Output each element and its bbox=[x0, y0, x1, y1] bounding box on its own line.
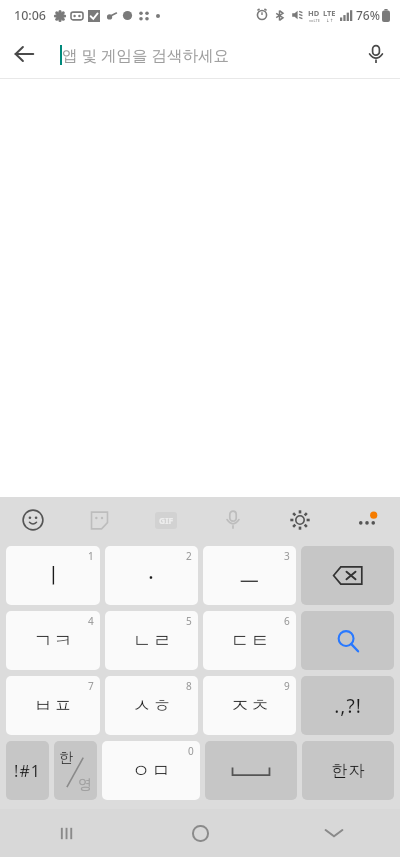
button[interactable]: Stickers bbox=[66, 497, 132, 543]
button[interactable]: Home bbox=[134, 809, 267, 857]
staticText: 9 bbox=[284, 679, 290, 693]
staticText: ㅂㅍ bbox=[33, 694, 73, 718]
staticText: 한자 bbox=[331, 761, 365, 781]
staticText: ㅇㅁ bbox=[131, 759, 171, 783]
staticText: ㄱㅋ bbox=[33, 629, 73, 653]
button[interactable]: ㅂㅍ bbox=[6, 676, 100, 735]
staticText: ㅣ bbox=[42, 562, 65, 590]
staticText: ㄷㅌ bbox=[230, 629, 270, 653]
staticText: ㅅㅎ bbox=[132, 694, 172, 718]
staticText: 7 bbox=[88, 679, 94, 693]
staticText: ㄴㄹ bbox=[132, 629, 172, 653]
button[interactable]: Backspace bbox=[301, 546, 394, 605]
button[interactable]: Space bbox=[205, 741, 297, 800]
button[interactable]: 한자 bbox=[302, 741, 394, 800]
button[interactable]: Voice search bbox=[352, 30, 400, 78]
staticText: GIF bbox=[159, 515, 174, 527]
staticText: 3 bbox=[284, 549, 290, 563]
button[interactable]: · bbox=[105, 546, 198, 605]
staticText: LTE bbox=[323, 8, 336, 18]
button[interactable]: ㅡ bbox=[203, 546, 296, 605]
staticText: ㅈㅊ bbox=[230, 694, 270, 718]
button[interactable]: Recent apps bbox=[0, 809, 134, 857]
staticText: voLTE bbox=[309, 18, 320, 23]
button[interactable]: !#1 bbox=[6, 741, 49, 800]
button[interactable]: Korean English toggle bbox=[54, 741, 97, 800]
button[interactable]: ㄱㅋ bbox=[6, 611, 100, 670]
staticText: 4 bbox=[88, 614, 94, 628]
button[interactable]: Hide keyboard bbox=[267, 809, 400, 857]
staticText: ㅡ bbox=[238, 562, 261, 590]
staticText: 한 bbox=[59, 749, 73, 767]
button[interactable]: Voice input bbox=[199, 497, 266, 543]
staticText: · bbox=[148, 561, 155, 591]
button[interactable]: ㅣ bbox=[6, 546, 100, 605]
button[interactable]: ㅈㅊ bbox=[203, 676, 296, 735]
button[interactable]: ㅅㅎ bbox=[105, 676, 198, 735]
staticText: 10:06 bbox=[14, 7, 47, 24]
staticText: !#1 bbox=[14, 760, 41, 782]
staticText: 앱 및 게임을 검색하세요 bbox=[62, 44, 230, 65]
staticText: 76% bbox=[356, 7, 380, 23]
staticText: 0 bbox=[188, 744, 194, 758]
staticText: 5 bbox=[186, 614, 192, 628]
button[interactable]: More options bbox=[333, 497, 400, 543]
staticText: 1 bbox=[88, 549, 94, 563]
staticText: 8 bbox=[186, 679, 192, 693]
button[interactable]: Settings bbox=[266, 497, 333, 543]
button[interactable]: .,?! bbox=[301, 676, 394, 735]
staticText: .,?! bbox=[334, 693, 362, 719]
staticText: HD bbox=[308, 8, 320, 18]
staticText: 2 bbox=[186, 549, 192, 563]
staticText: 6 bbox=[284, 614, 290, 628]
button[interactable]: ㄷㅌ bbox=[203, 611, 296, 670]
staticText: 영 bbox=[78, 776, 92, 794]
button[interactable]: GIF bbox=[132, 497, 199, 543]
button[interactable]: Search bbox=[301, 611, 394, 670]
button[interactable]: Emoji bbox=[0, 497, 66, 543]
button[interactable]: ㅇㅁ bbox=[102, 741, 200, 800]
button[interactable]: ㄴㄹ bbox=[105, 611, 198, 670]
staticText: ↓↑ bbox=[326, 18, 334, 23]
button[interactable]: Back bbox=[0, 30, 48, 78]
